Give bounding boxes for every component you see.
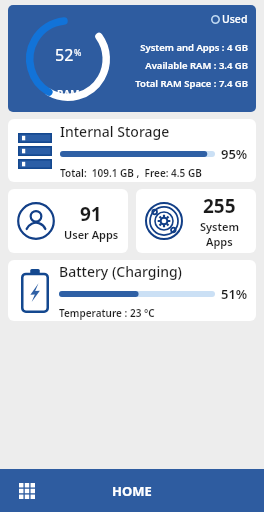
staticText: Temperature : 23 °C [59,306,155,320]
staticText: Battery (Charging) [59,262,182,281]
button[interactable]: 91 [8,189,128,253]
staticText: 95% [221,145,248,163]
staticText: 52 [55,44,74,66]
button[interactable]: Used [211,12,248,26]
staticText: 51% [221,285,248,303]
staticText: System and Apps : 4 GB [140,41,248,54]
staticText: Apps [206,234,233,249]
button[interactable]: Battery (Charging) [8,260,256,321]
button[interactable]: Apps grid [8,472,46,510]
staticText: Total RAM Space : 7.4 GB [135,77,248,90]
staticText: Total: 109.1 GB , Free: 4.5 GB [60,166,202,180]
staticText: Available RAM : 3.4 GB [145,59,248,72]
staticText: RAM [57,87,80,101]
staticText: Used [222,12,248,26]
staticText: 255 [203,193,236,219]
staticText: HOME [112,482,152,500]
button[interactable]: 255 [136,189,256,253]
button[interactable]: HOME [94,474,170,508]
button[interactable]: Internal Storage [8,119,256,182]
button[interactable]: Used [8,5,256,112]
staticText: System [200,219,239,234]
staticText: User Apps [64,227,119,242]
staticText: 91 [80,201,102,227]
staticText: % [74,46,82,58]
staticText: Internal Storage [60,122,170,141]
